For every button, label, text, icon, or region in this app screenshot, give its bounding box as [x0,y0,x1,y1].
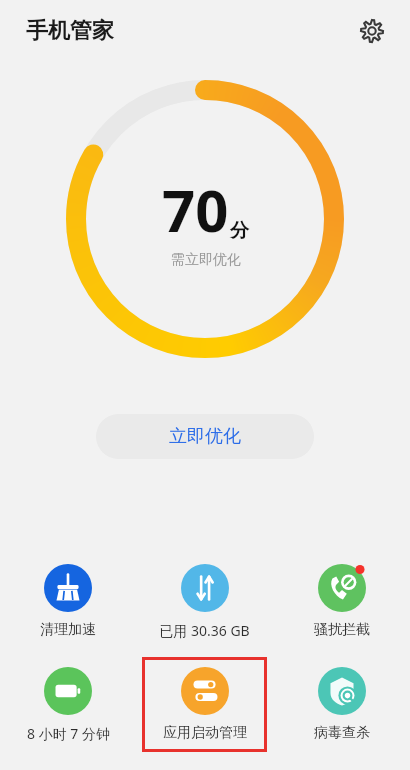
button[interactable]: 应用启动管理 [137,659,272,750]
staticText: 需立即优化 [171,251,241,269]
staticText: 立即优化 [169,425,241,448]
staticText: 已用 30.36 GB [159,621,250,640]
button[interactable]: 病毒查杀 [273,659,410,750]
staticText: 8 小时 7 分钟 [27,724,110,743]
button[interactable]: 清理加速 [0,556,136,647]
staticText: 70 [162,170,229,249]
staticText: 应用启动管理 [163,724,247,742]
button[interactable]: Settings [352,11,392,51]
staticText: 病毒查杀 [314,724,370,742]
staticText: 分 [230,219,249,243]
button[interactable]: 已用 30.36 GB [136,556,273,648]
button[interactable]: 8 小时 7 分钟 [0,659,136,751]
button[interactable]: 立即优化 [96,414,314,459]
staticText: 清理加速 [40,621,96,639]
staticText: 手机管家 [26,17,114,45]
staticText: 骚扰拦截 [314,621,370,639]
button[interactable]: 骚扰拦截 [273,556,410,647]
